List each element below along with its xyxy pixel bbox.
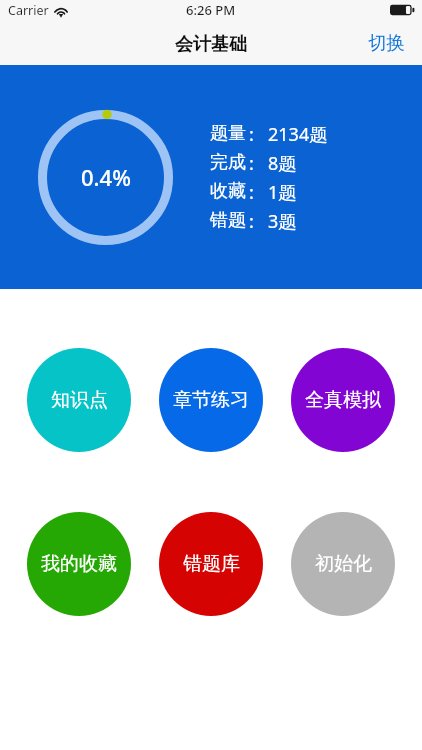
staticText: 完成 bbox=[210, 151, 246, 174]
button[interactable]: 切换 bbox=[350, 25, 422, 60]
button[interactable]: 我的收藏 bbox=[27, 512, 131, 616]
staticText: 会计基础 bbox=[175, 33, 247, 56]
button[interactable]: 初始化 bbox=[291, 512, 395, 616]
staticText: 切换 bbox=[368, 31, 405, 54]
staticText: 8题 bbox=[268, 151, 297, 176]
staticText: 题量 bbox=[210, 122, 246, 145]
button[interactable]: 章节练习 bbox=[159, 348, 263, 452]
staticText: 全真模拟 bbox=[305, 388, 381, 412]
button[interactable]: 知识点 bbox=[27, 348, 131, 452]
button[interactable]: 全真模拟 bbox=[291, 348, 395, 452]
staticText: : bbox=[249, 122, 254, 147]
staticText: 初始化 bbox=[315, 552, 372, 576]
button[interactable]: 错题库 bbox=[159, 512, 263, 616]
staticText: 知识点 bbox=[51, 388, 108, 412]
staticText: 0.4% bbox=[81, 162, 131, 192]
staticText: 2134题 bbox=[268, 122, 328, 147]
staticText: Carrier bbox=[8, 2, 49, 19]
staticText: 章节练习 bbox=[173, 388, 249, 412]
staticText: 我的收藏 bbox=[41, 552, 117, 576]
staticText: 1题 bbox=[268, 180, 297, 205]
staticText: 6:26 PM bbox=[186, 1, 236, 19]
staticText: 错题 bbox=[210, 209, 246, 232]
staticText: 错题库 bbox=[183, 552, 240, 576]
staticText: : bbox=[249, 180, 254, 205]
staticText: 收藏 bbox=[210, 180, 246, 203]
staticText: : bbox=[249, 209, 254, 234]
staticText: : bbox=[249, 151, 254, 176]
staticText: 3题 bbox=[268, 209, 297, 234]
